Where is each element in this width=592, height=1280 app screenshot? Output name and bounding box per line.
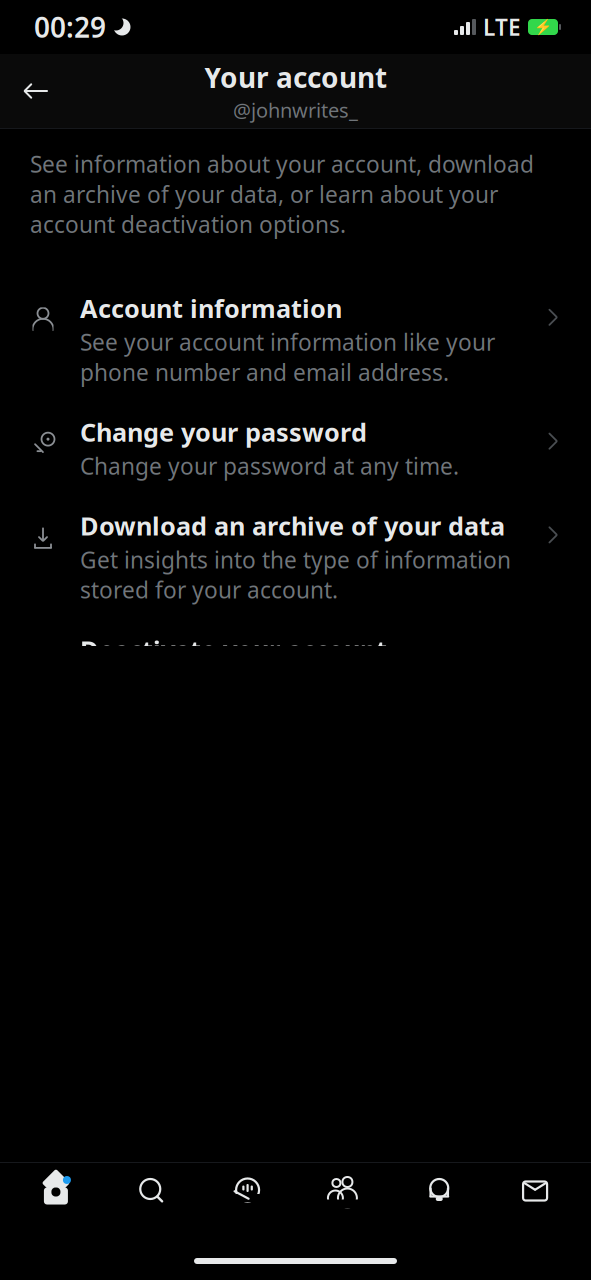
button[interactable]: Back bbox=[8, 63, 64, 119]
button[interactable]: Change your password bbox=[0, 401, 591, 495]
button[interactable]: Communities bbox=[295, 1163, 391, 1219]
staticText: ⚡ bbox=[534, 19, 552, 35]
button[interactable]: Deactivate your account bbox=[0, 619, 591, 742]
button[interactable]: Messages bbox=[487, 1163, 583, 1219]
staticText: Deactivate your account bbox=[80, 633, 387, 666]
button[interactable]: Notifications bbox=[391, 1163, 487, 1219]
staticText: @johnwrites_ bbox=[233, 97, 358, 123]
staticText: Download an archive of your data bbox=[80, 509, 505, 542]
staticText: Get insights into the type of informatio… bbox=[80, 544, 511, 605]
button[interactable]: Download an archive of your data bbox=[0, 495, 591, 619]
staticText: Change your password bbox=[80, 415, 367, 449]
staticText: LTE bbox=[483, 12, 521, 42]
staticText: Change your password at any time. bbox=[80, 451, 459, 481]
staticText: See information about your account, down… bbox=[30, 149, 534, 239]
button[interactable]: Search bbox=[104, 1163, 200, 1219]
staticText: 00:29 bbox=[34, 8, 106, 46]
staticText: Your account bbox=[204, 59, 387, 96]
staticText: See your account information like your p… bbox=[80, 327, 495, 387]
staticText: Account information bbox=[80, 291, 342, 325]
button[interactable]: Spaces bbox=[200, 1163, 295, 1219]
button[interactable]: Account information bbox=[0, 277, 591, 401]
button[interactable]: Home bbox=[8, 1163, 104, 1219]
